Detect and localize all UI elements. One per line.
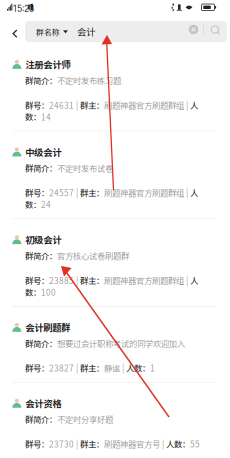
staticText: 中级会计: [25, 145, 61, 159]
button[interactable]: 初级会计: [0, 219, 230, 307]
staticText: 注册会计师: [25, 57, 70, 71]
button[interactable]: Back: [6, 23, 23, 44]
staticText: 会计资格: [25, 396, 61, 410]
staticText: 群号：24631 | 群主：刷题神器官方刷题群组 | 人数：14: [25, 99, 198, 123]
button[interactable]: Clear: [189, 25, 198, 34]
staticText: 会计刷题群: [25, 320, 70, 334]
staticText: 群号：24557 | 群主：刷题神器官方刷题群组 | 人数：24: [25, 187, 198, 210]
staticText: 15:23: [13, 3, 34, 14]
staticText: 初级会计: [25, 233, 61, 246]
button[interactable]: 中级会计: [0, 132, 230, 219]
staticText: 群号：23885 | 群主：刷题神器官方刷题群组 | 人数：100: [25, 274, 198, 298]
staticText: 群简介：想要过会计职称考试的同学欢迎加入: [25, 337, 185, 349]
staticText: 群简介：不定时分享好题: [25, 413, 113, 425]
staticText: 群号：23827 | 群主：静谧 | 人数：1: [25, 362, 155, 374]
button[interactable]: 会计资格: [0, 383, 230, 458]
staticText: 群简介：不定时发布试卷: [25, 162, 113, 174]
button[interactable]: 群名称: [36, 26, 68, 37]
staticText: 会计: [77, 25, 95, 38]
staticText: 群简介：不定时发布练习题: [25, 74, 121, 86]
staticText: 群简介：官方核心试卷刷题群: [25, 250, 129, 261]
button[interactable]: 注册会计师: [0, 44, 230, 132]
staticText: 群号：23730 | 群主：刷题神器官方号 | 人数：55: [25, 438, 200, 450]
staticText: 群名称: [36, 26, 60, 37]
button[interactable]: 会计刷题群: [0, 307, 230, 383]
button[interactable]: Search: [210, 25, 219, 34]
